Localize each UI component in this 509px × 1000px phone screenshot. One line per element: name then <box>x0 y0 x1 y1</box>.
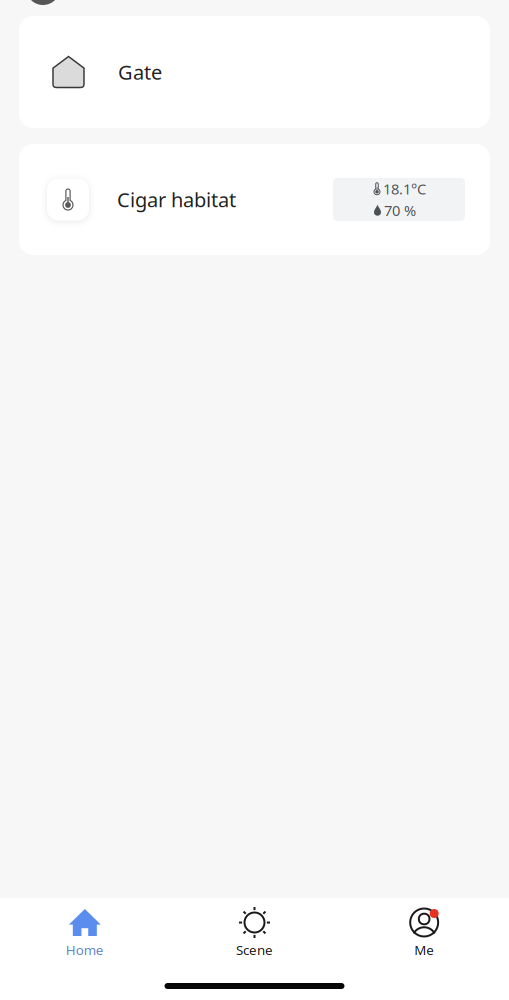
staticText: Home <box>66 941 104 959</box>
button[interactable]: Gate <box>19 16 490 128</box>
button[interactable]: Scene <box>170 905 339 963</box>
staticText: Me <box>414 941 434 959</box>
staticText: Gate <box>118 59 162 85</box>
staticText: 18.1°C <box>383 179 426 198</box>
button[interactable]: Cigar habitat <box>19 144 490 255</box>
staticText: Cigar habitat <box>117 186 236 213</box>
button[interactable]: Me <box>339 905 509 963</box>
staticText: Scene <box>236 941 273 959</box>
button[interactable]: Home <box>0 905 170 963</box>
staticText: 70 % <box>384 200 416 220</box>
